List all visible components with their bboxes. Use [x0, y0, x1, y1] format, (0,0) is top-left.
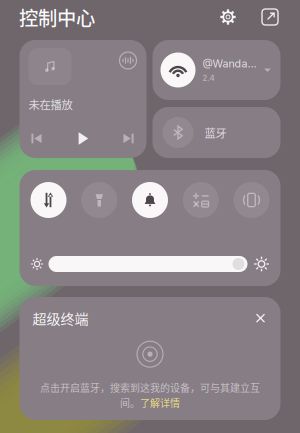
button[interactable]: 手电筒: [81, 182, 117, 218]
staticText: 未在播放: [28, 96, 72, 112]
button[interactable]: 编辑: [259, 6, 281, 28]
button[interactable]: 关闭: [253, 311, 267, 325]
button[interactable]: 振动: [233, 182, 269, 218]
staticText: @WandaPla: [202, 57, 258, 70]
staticText: 2.4: [202, 73, 214, 83]
button[interactable]: 响铃: [132, 182, 168, 218]
button[interactable]: 移动数据: [30, 182, 66, 218]
staticText: 蓝牙: [204, 124, 226, 141]
staticText: 了解详情: [140, 395, 180, 410]
staticText: 间。: [120, 395, 140, 410]
staticText: 控制中心: [19, 3, 95, 31]
staticText: 超级终端: [32, 308, 88, 328]
button[interactable]: 未在播放: [19, 40, 146, 158]
button[interactable]: 设置: [217, 6, 239, 28]
staticText: 点击开启蓝牙，搜索到这我的设备，可与其建立互: [40, 380, 260, 394]
button[interactable]: 计算器: [183, 182, 219, 218]
button[interactable]: 蓝牙: [152, 107, 280, 158]
button[interactable]: @WandaPla: [152, 40, 280, 100]
